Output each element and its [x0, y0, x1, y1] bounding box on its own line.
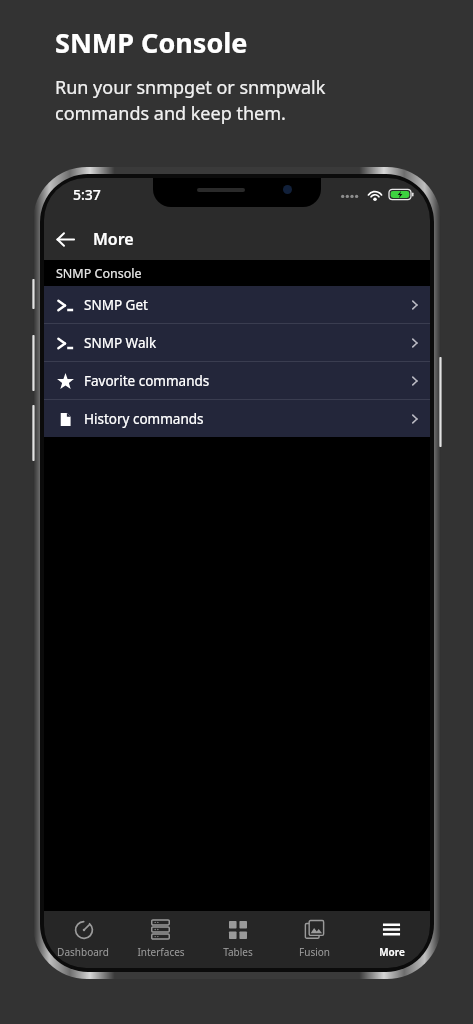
button[interactable]: Fusion	[276, 911, 353, 968]
button[interactable]: Back	[44, 218, 86, 260]
staticText: 5:37	[73, 185, 101, 204]
staticText: More	[379, 945, 405, 959]
button[interactable]: SNMP Get	[44, 286, 430, 323]
staticText: History commands	[84, 410, 408, 428]
button[interactable]: Interfaces	[122, 911, 199, 968]
button[interactable]: Tables	[199, 911, 276, 968]
button[interactable]: More	[353, 911, 430, 968]
staticText: Favorite commands	[84, 372, 408, 390]
staticText: Interfaces	[137, 945, 185, 959]
button[interactable]: Dashboard	[44, 911, 122, 968]
staticText: Tables	[223, 945, 253, 959]
staticText: SNMP Walk	[84, 334, 408, 352]
staticText: More	[93, 228, 134, 250]
staticText: Run your snmpget or snmpwalk commands an…	[55, 75, 326, 125]
button[interactable]: Favorite commands	[44, 362, 430, 399]
button[interactable]: History commands	[44, 400, 430, 437]
button[interactable]: SNMP Walk	[44, 324, 430, 361]
staticText: Fusion	[299, 945, 330, 959]
staticText: SNMP Console	[55, 24, 248, 61]
staticText: SNMP Console	[56, 265, 142, 282]
staticText: SNMP Get	[84, 296, 408, 314]
staticText: Dashboard	[57, 945, 109, 959]
